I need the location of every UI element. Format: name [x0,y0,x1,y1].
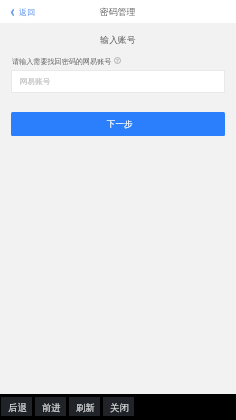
staticText: ? [116,57,119,64]
staticText: 网易账号 [20,77,51,87]
button[interactable]: 关闭 [103,397,134,416]
button[interactable]: 下一步 [11,112,225,136]
staticText: 刷新 [76,402,95,414]
staticText: 关闭 [110,402,129,414]
staticText: 请输入需要找回密码的网易账号 [12,57,112,66]
button[interactable]: 网易账号 [11,70,225,93]
staticText: 后退 [8,402,27,414]
button[interactable]: 刷新 [69,397,100,416]
button[interactable]: 返回 [8,4,38,20]
button[interactable]: 帮助 [114,57,121,64]
staticText: 返回 [19,7,35,17]
staticText: 密码管理 [100,6,136,17]
button[interactable]: 后退 [1,397,32,416]
button[interactable]: 前进 [35,397,66,416]
staticText: 前进 [42,402,61,414]
staticText: 输入账号 [0,34,236,45]
staticText: 下一步 [107,119,133,130]
